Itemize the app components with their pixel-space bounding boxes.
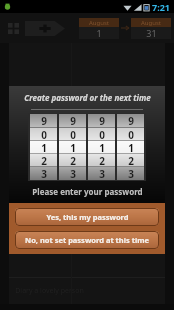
- staticText: 9: [128, 114, 134, 128]
- staticText: 3: [99, 167, 105, 180]
- staticText: 1: [41, 141, 47, 154]
- staticText: 1: [70, 141, 76, 154]
- button[interactable]: Password digit 1: [30, 114, 57, 180]
- staticText: 0: [41, 128, 47, 141]
- staticText: 7:21: [152, 1, 170, 13]
- staticText: 1: [128, 141, 134, 154]
- button[interactable]: August: [79, 18, 119, 39]
- button[interactable]: Add: [25, 21, 65, 36]
- staticText: 9: [99, 114, 105, 128]
- staticText: 2: [128, 154, 134, 167]
- button[interactable]: Password digit 4: [117, 114, 144, 180]
- staticText: 3: [41, 167, 47, 180]
- staticText: August: [89, 19, 109, 27]
- button[interactable]: Password digit 3: [88, 114, 115, 180]
- staticText: 3: [70, 167, 76, 180]
- staticText: August: [141, 19, 161, 27]
- staticText: Yes, this my password: [46, 212, 129, 222]
- staticText: 2: [99, 154, 105, 167]
- staticText: 0: [99, 128, 105, 141]
- button[interactable]: August: [131, 18, 171, 39]
- staticText: 2: [41, 154, 47, 167]
- staticText: 2: [70, 154, 76, 167]
- button[interactable]: Menu: [4, 19, 22, 37]
- staticText: 0: [128, 128, 134, 141]
- staticText: 0: [70, 128, 76, 141]
- staticText: Please enter your password: [32, 186, 143, 197]
- button[interactable]: No, not set password at this time: [15, 231, 159, 249]
- staticText: 3: [128, 167, 134, 180]
- staticText: 1: [99, 141, 105, 154]
- staticText: 31: [146, 27, 157, 39]
- staticText: 9: [70, 114, 76, 128]
- button[interactable]: Password digit 2: [59, 114, 86, 180]
- button[interactable]: Yes, this my password: [15, 208, 159, 226]
- staticText: No, not set password at this time: [25, 235, 149, 245]
- staticText: Create password or the next time: [24, 92, 151, 103]
- staticText: 1: [96, 27, 102, 39]
- staticText: 9: [41, 114, 47, 128]
